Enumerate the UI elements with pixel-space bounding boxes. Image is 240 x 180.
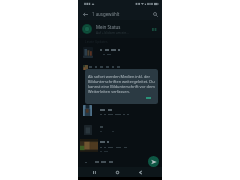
button[interactable]: Back [81,10,89,18]
button[interactable]: Search [151,10,159,18]
button[interactable]: Recent apps [90,168,99,177]
staticText: Mein Status [96,24,121,30]
staticText: Auf + klicken um ein... [96,31,129,35]
staticText: Letzte Updates [85,40,108,44]
button[interactable]: Mein Status [81,20,158,38]
button[interactable]: Back [136,168,145,177]
staticText: 1 ausgewählt [92,11,120,17]
button[interactable]: Send [148,156,159,167]
staticText: Ab sofort werden Medien inkl. der Bildun… [88,74,155,94]
button[interactable]: Home [113,168,122,177]
